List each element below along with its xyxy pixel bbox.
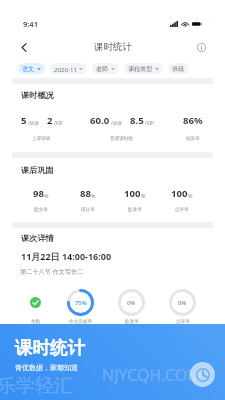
staticText: 11月22日 14:00-16:00	[21, 250, 112, 262]
staticText: 菁优数据，家都知道	[15, 363, 78, 372]
staticText: 点评率	[176, 319, 190, 325]
staticText: 乐学轻汇	[0, 374, 73, 398]
staticText: 批改率	[128, 207, 142, 213]
button[interactable]: Information	[192, 38, 210, 56]
staticText: 课后巩固	[21, 165, 54, 175]
button[interactable]: 课程类型	[124, 63, 163, 74]
staticText: %	[188, 192, 193, 199]
staticText: 60.0	[90, 114, 110, 127]
staticText: 语文	[22, 65, 35, 73]
staticText: %	[44, 192, 49, 199]
staticText: 得分率	[81, 207, 95, 213]
staticText: 75%	[75, 299, 87, 307]
staticText: 上课班级	[32, 136, 51, 142]
button[interactable]: Back	[15, 38, 33, 56]
staticText: 课时统计	[94, 41, 132, 53]
staticText: 点评率	[175, 207, 189, 213]
staticText: 续班率	[186, 136, 200, 142]
staticText: 课次详情	[21, 233, 54, 243]
staticText: 0%	[178, 299, 187, 307]
staticText: 86%	[183, 114, 203, 127]
staticText: 100	[124, 187, 141, 200]
staticText: NJYCQH.COM	[102, 364, 202, 386]
staticText: 课时统计	[15, 337, 85, 359]
staticText: 课程类型	[128, 65, 153, 73]
button[interactable]: 老师	[92, 63, 119, 74]
staticText: 老师	[96, 65, 109, 73]
staticText: 98	[33, 187, 44, 200]
staticText: /VIP	[145, 120, 154, 126]
staticText: %	[141, 192, 146, 199]
staticText: /VIP	[54, 120, 63, 126]
staticText: 管课课时数	[110, 136, 133, 142]
button[interactable]: Clock	[190, 362, 215, 387]
staticText: /班课	[111, 120, 122, 126]
button[interactable]: 2020-11	[50, 63, 87, 74]
staticText: 100	[171, 187, 188, 200]
staticText: 考勤	[31, 319, 41, 325]
staticText: 课时概况	[21, 90, 54, 100]
staticText: 88	[80, 187, 91, 200]
staticText: /班课	[28, 120, 39, 126]
staticText: 班级	[172, 65, 185, 73]
staticText: 9:41	[23, 19, 38, 29]
staticText: 8.5	[130, 114, 144, 127]
staticText: 批改率	[125, 319, 139, 325]
button[interactable]: 班级	[168, 63, 189, 74]
staticText: 提交率	[34, 207, 48, 213]
staticText: 2	[47, 114, 53, 127]
button[interactable]: 语文	[18, 63, 45, 74]
staticText: %	[91, 192, 96, 199]
staticText: 第二十八节 作文写作二	[20, 267, 84, 275]
staticText: 0%	[127, 299, 136, 307]
staticText: 5	[21, 114, 27, 127]
staticText: 作业完成率	[69, 319, 92, 325]
staticText: 2020-11	[54, 65, 77, 73]
